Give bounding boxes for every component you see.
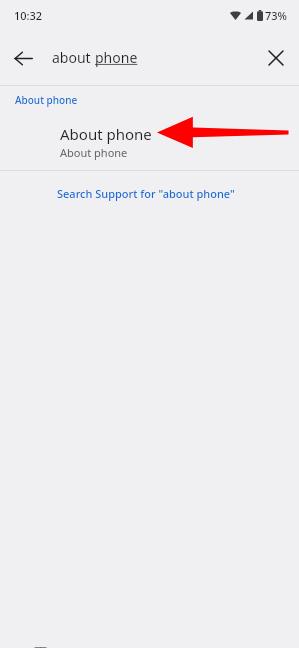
staticText: Search Support for "about phone" (57, 186, 235, 201)
staticText: phone (95, 48, 138, 67)
staticText: 10:32 (14, 8, 43, 23)
button[interactable]: Clear search (253, 35, 299, 81)
staticText: About phone (60, 145, 128, 160)
staticText: about (52, 48, 95, 67)
staticText: 73% (265, 8, 287, 23)
staticText: About phone (15, 93, 78, 107)
button[interactable]: About phone (0, 113, 299, 170)
button[interactable]: Search Support for "about phone" (0, 171, 299, 216)
staticText: About phone (60, 124, 152, 144)
button[interactable]: Back (0, 35, 46, 81)
